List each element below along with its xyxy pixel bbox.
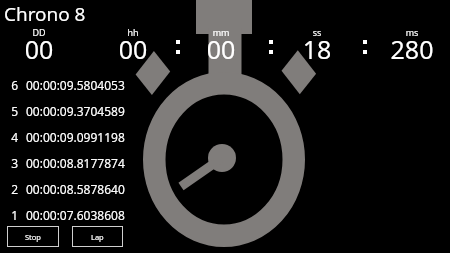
staticText: 00:00:08.8177874	[26, 155, 125, 171]
staticText: hh	[88, 26, 178, 38]
button[interactable]: Lap	[72, 226, 123, 247]
staticText: 00	[88, 32, 178, 66]
staticText: DD	[0, 26, 84, 38]
staticText: 00:00:08.5878640	[26, 181, 125, 197]
staticText: 00	[176, 32, 266, 66]
staticText: 00:00:09.3704589	[26, 103, 125, 119]
button[interactable]: 1	[0, 207, 180, 220]
staticText: 00:00:09.0991198	[26, 129, 125, 145]
button[interactable]: 5	[0, 103, 180, 121]
button[interactable]: Stop	[7, 226, 59, 247]
staticText: mm	[176, 26, 266, 38]
staticText: 3	[6, 155, 18, 171]
button[interactable]: 3	[0, 155, 180, 173]
staticText: 18	[272, 32, 362, 66]
staticText: ss	[272, 26, 362, 38]
staticText: Lap	[91, 232, 104, 242]
staticText: Stop	[25, 232, 41, 242]
button[interactable]: 4	[0, 129, 180, 147]
staticText: 00:00:07.6038608	[26, 207, 125, 220]
staticText: 2	[6, 181, 18, 197]
staticText: 4	[6, 129, 18, 145]
staticText: 00:00:09.5804053	[26, 77, 125, 93]
staticText: 6	[6, 77, 18, 93]
staticText: ms	[367, 26, 450, 38]
button[interactable]: 2	[0, 181, 180, 199]
staticText: 280	[367, 32, 450, 66]
staticText: 1	[6, 207, 18, 220]
staticText: Chrono 8	[4, 1, 86, 27]
staticText: 5	[6, 103, 18, 119]
staticText: 00	[0, 32, 84, 66]
button[interactable]: 6	[0, 77, 180, 95]
